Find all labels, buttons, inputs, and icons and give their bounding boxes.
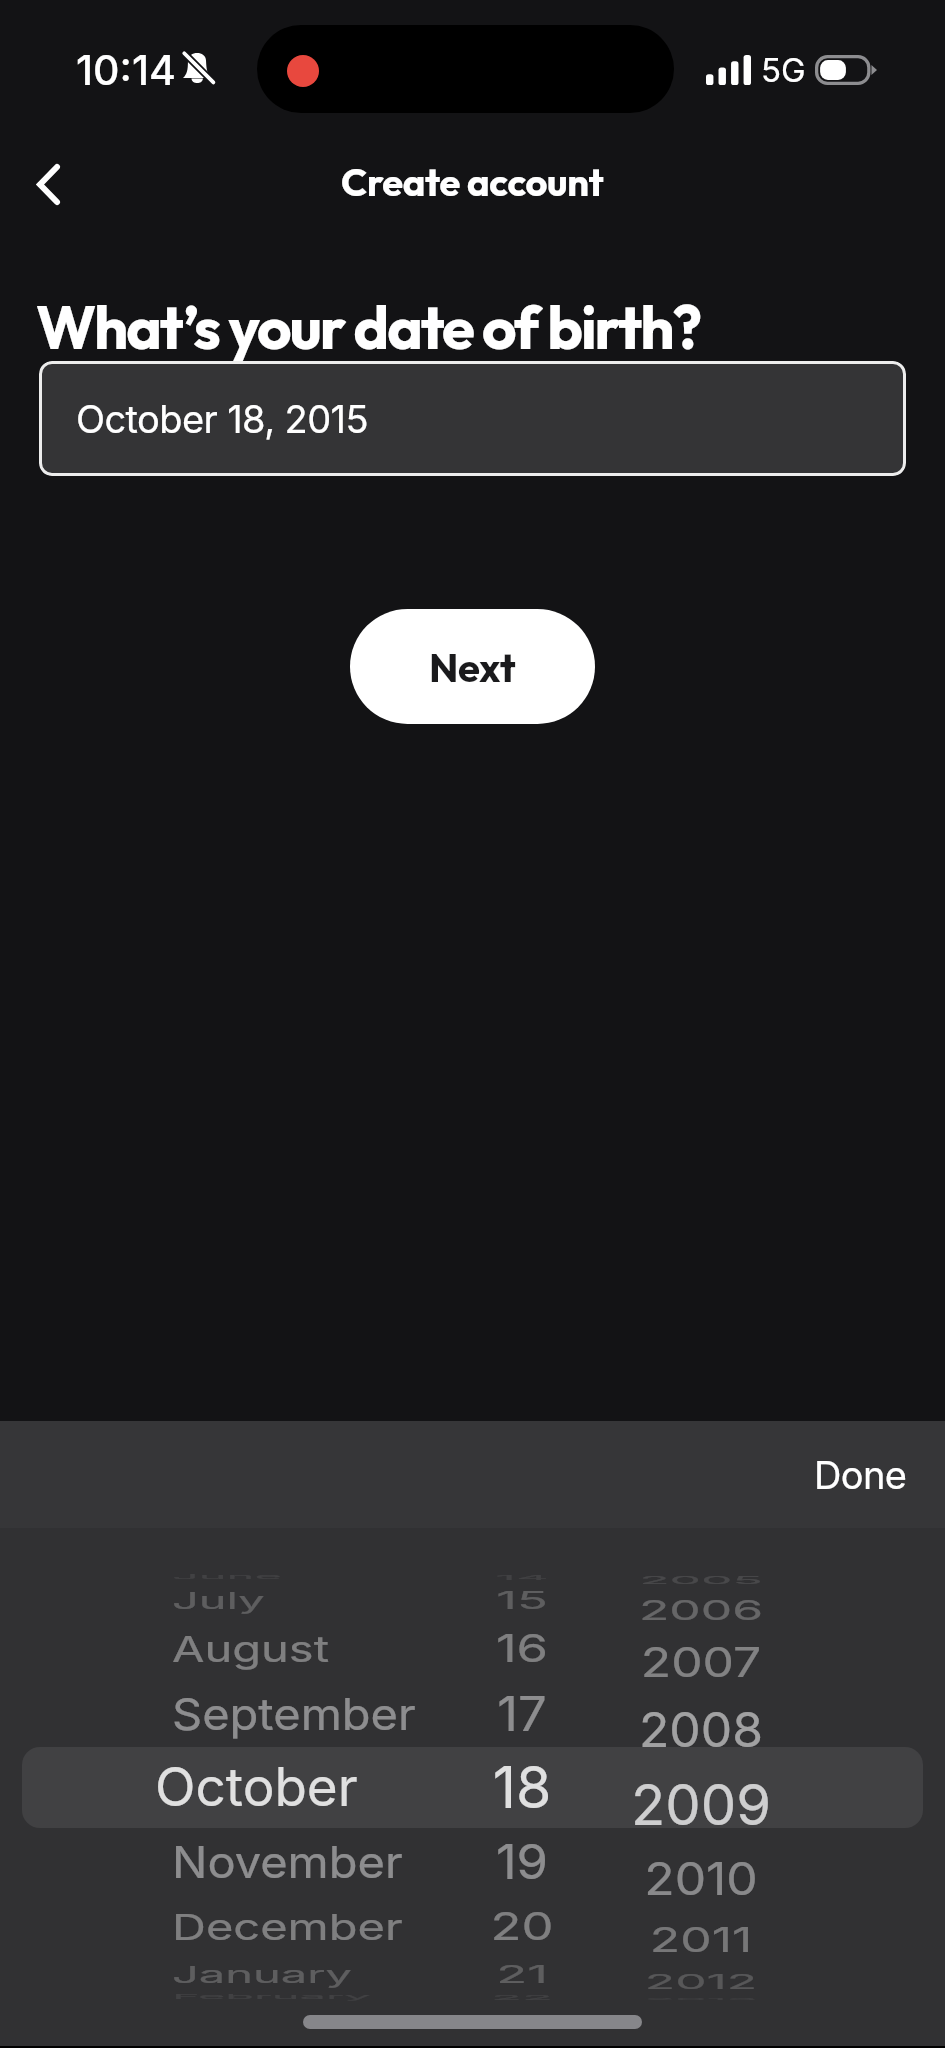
staticText: 5G bbox=[761, 50, 806, 90]
staticText: 15 bbox=[442, 1586, 602, 1615]
staticText: 22 bbox=[442, 1993, 602, 2001]
staticText: January bbox=[172, 1961, 772, 1988]
staticText: 20 bbox=[442, 1903, 602, 1949]
staticText: 2005 bbox=[551, 1573, 851, 1587]
staticText: 2009 bbox=[551, 1771, 851, 1839]
staticText: 17 bbox=[442, 1685, 602, 1742]
staticText: Done bbox=[814, 1452, 907, 1498]
staticText: 2013 bbox=[551, 1998, 851, 2000]
staticText: 2007 bbox=[551, 1638, 851, 1686]
button[interactable]: October 18, 2015 bbox=[39, 361, 906, 476]
button[interactable]: Next bbox=[350, 609, 595, 724]
button[interactable]: Back bbox=[12, 147, 84, 219]
staticText: 19 bbox=[442, 1833, 602, 1890]
staticText: September bbox=[172, 1687, 772, 1740]
staticText: October bbox=[155, 1755, 755, 1819]
staticText: 2006 bbox=[551, 1593, 851, 1626]
staticText: Next bbox=[429, 642, 516, 692]
staticText: 18 bbox=[442, 1753, 602, 1822]
staticText: 2010 bbox=[551, 1852, 851, 1906]
staticText: 2008 bbox=[551, 1701, 851, 1759]
staticText: What’s your date of birth? bbox=[36, 289, 701, 365]
button[interactable]: Done bbox=[814, 1452, 907, 1498]
staticText: 21 bbox=[442, 1960, 602, 1989]
staticText: November bbox=[172, 1835, 772, 1888]
staticText: 2011 bbox=[551, 1919, 851, 1961]
staticText: December bbox=[172, 1905, 772, 1948]
staticText: 10:14 bbox=[76, 45, 176, 95]
staticText: August bbox=[172, 1627, 772, 1670]
staticText: 14 bbox=[442, 1573, 602, 1581]
staticText: October 18, 2015 bbox=[76, 396, 368, 442]
staticText: June bbox=[172, 1573, 772, 1581]
staticText: 16 bbox=[442, 1625, 602, 1671]
staticText: July bbox=[172, 1587, 772, 1614]
staticText: 2012 bbox=[551, 1970, 851, 1994]
staticText: Create account bbox=[341, 158, 604, 206]
staticText: February bbox=[172, 1993, 772, 2001]
